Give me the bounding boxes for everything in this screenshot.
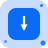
- button[interactable]: Download: [8, 8, 40, 40]
